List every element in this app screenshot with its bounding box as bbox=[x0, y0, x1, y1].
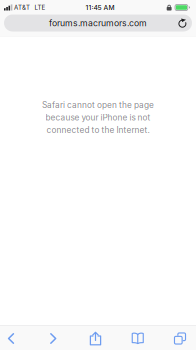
staticText: Safari cannot open the page bbox=[42, 100, 154, 110]
button[interactable]: Bookmarks bbox=[117, 325, 159, 350]
staticText: because your iPhone is not bbox=[45, 112, 150, 122]
button[interactable]: Back bbox=[0, 325, 32, 350]
staticText: AT&T bbox=[14, 4, 30, 11]
staticText: forums.macrumors.com bbox=[49, 18, 147, 28]
staticText: 11:45 AM bbox=[85, 3, 114, 12]
button[interactable]: Tabs bbox=[159, 325, 196, 350]
button[interactable]: forums.macrumors.com bbox=[4, 14, 192, 31]
button[interactable]: Share bbox=[74, 325, 117, 350]
staticText: connected to the Internet. bbox=[46, 125, 149, 135]
button[interactable]: Forward bbox=[32, 325, 74, 350]
staticText: LTE bbox=[34, 4, 45, 11]
